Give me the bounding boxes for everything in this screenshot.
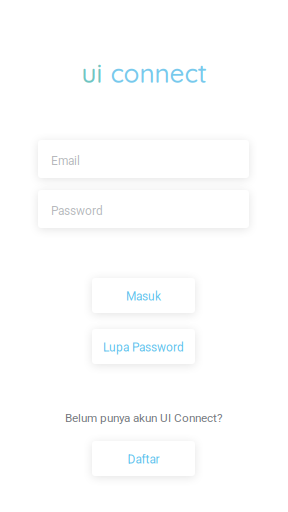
staticText: Password <box>51 204 103 218</box>
staticText: Email <box>51 154 80 168</box>
staticText: Belum punya akun UI Connect? <box>65 411 223 425</box>
button[interactable]: Password <box>38 190 249 228</box>
button[interactable]: Daftar <box>92 441 195 476</box>
staticText: Daftar <box>127 452 159 466</box>
staticText: ui <box>81 57 102 89</box>
button[interactable]: Lupa Password <box>92 329 195 364</box>
staticText: Masuk <box>126 289 161 303</box>
staticText: Lupa Password <box>103 340 184 354</box>
button[interactable]: Masuk <box>92 278 195 313</box>
staticText: connect <box>110 57 206 89</box>
button[interactable]: Email <box>38 140 249 178</box>
